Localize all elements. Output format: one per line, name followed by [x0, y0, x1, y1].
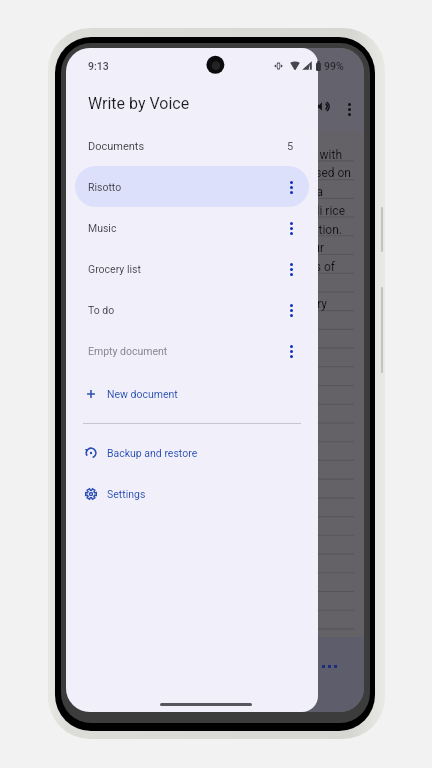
staticText: Risotto — [88, 181, 122, 193]
button[interactable]: More options for Music — [280, 217, 302, 239]
button[interactable]: More options for Grocery list — [280, 258, 302, 280]
button[interactable]: More options for Empty document — [280, 340, 302, 362]
button[interactable]: Settings — [66, 473, 318, 514]
staticText: Ingredients that you will be needing for… — [66, 241, 324, 255]
staticText: Write by Voice — [88, 94, 190, 113]
staticText: To do — [88, 304, 115, 316]
staticText: people: one small white onion, 320 grams… — [66, 260, 335, 274]
button[interactable]: Grocery list — [75, 248, 309, 289]
staticText: Music — [88, 222, 117, 234]
staticText: 9:13 — [88, 60, 109, 72]
staticText: Documents — [88, 140, 145, 153]
staticText: 5 — [287, 140, 294, 153]
staticText: New document — [107, 388, 178, 400]
button[interactable]: More options for To do — [280, 299, 302, 321]
button[interactable]: Risotto — [75, 166, 309, 207]
staticText: Settings — [107, 488, 146, 500]
staticText: great care and attention during preparat… — [66, 223, 342, 237]
button[interactable]: Music — [75, 207, 309, 248]
button[interactable]: To do — [75, 289, 309, 330]
staticText: Risotto is a traditional Italian dish ma… — [66, 148, 342, 162]
staticText: Backup and restore — [107, 447, 198, 459]
staticText: rice, one litre of warm stock, butter an… — [66, 297, 327, 311]
staticText: Empty document — [88, 345, 168, 357]
staticText: good quality short grain Italian carnaro… — [66, 204, 345, 218]
staticText: a slow and gradual cooking method based … — [66, 166, 351, 180]
button[interactable]: Backup and restore — [66, 432, 318, 473]
staticText: Grocery list — [88, 263, 141, 275]
button[interactable]: New document — [66, 373, 318, 414]
staticText: 99% — [324, 60, 344, 72]
staticText: continuous stirring and gradual use of a — [66, 185, 323, 199]
button[interactable]: Empty document — [75, 330, 309, 371]
button[interactable]: More options for Risotto — [280, 176, 302, 198]
